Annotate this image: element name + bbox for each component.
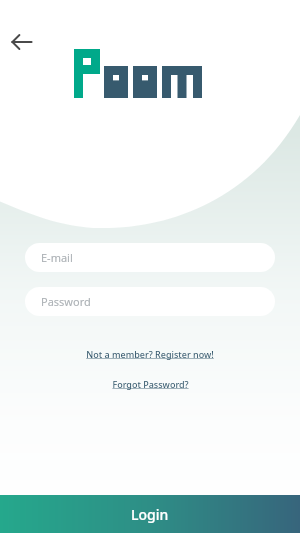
button[interactable]: Forgot Password? xyxy=(106,377,195,391)
staticText: Password xyxy=(41,294,91,309)
staticText: Forgot Password? xyxy=(112,378,189,390)
button[interactable]: Login xyxy=(0,495,300,533)
button[interactable]: E-mail xyxy=(25,243,275,272)
staticText: Login xyxy=(131,505,169,524)
staticText: E-mail xyxy=(41,250,73,265)
button[interactable]: Not a member? Register now! xyxy=(80,347,220,361)
staticText: Not a member? Register now! xyxy=(86,348,214,360)
button[interactable]: Password xyxy=(25,287,275,316)
button[interactable]: Back xyxy=(6,26,38,58)
